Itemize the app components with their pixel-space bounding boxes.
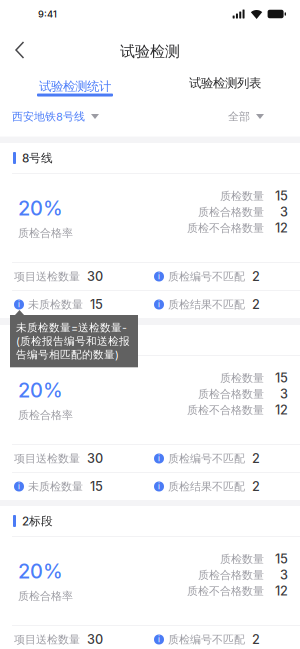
staticText: 12 — [275, 402, 288, 418]
staticText: i — [18, 482, 20, 491]
staticText: i — [158, 454, 160, 463]
staticText: 12 — [275, 220, 288, 236]
staticText: 全部 — [228, 110, 250, 123]
button[interactable]: 试验检测统计 — [0, 66, 150, 98]
staticText: 3 — [280, 386, 288, 402]
staticText: 15 — [90, 297, 103, 312]
staticText: 质检结果不匹配 — [168, 298, 245, 311]
staticText: 质检合格数量 — [198, 387, 264, 401]
staticText: 质检编号不匹配 — [168, 270, 245, 283]
staticText: 质检合格数量 — [198, 205, 264, 219]
staticText: 试验检测统计 — [39, 78, 111, 94]
staticText: 2 — [252, 632, 260, 647]
staticText: 西安地铁8号线 — [12, 110, 85, 123]
staticText: 试验检测列表 — [189, 75, 261, 91]
button[interactable]: 西安地铁8号线 — [0, 98, 99, 137]
staticText: 30 — [87, 632, 103, 647]
staticText: 质检数量 — [220, 371, 264, 385]
staticText: 20% — [18, 196, 63, 220]
staticText: i — [158, 635, 160, 644]
staticText: 质检不合格数量 — [187, 221, 264, 235]
staticText: 20% — [18, 559, 63, 583]
staticText: 质检编号不匹配 — [168, 452, 245, 465]
staticText: 质检合格率 — [18, 408, 73, 422]
staticText: 2 — [252, 297, 260, 312]
staticText: 30 — [87, 269, 103, 284]
staticText: 2 — [252, 451, 260, 466]
staticText: 2 — [252, 269, 260, 284]
staticText: 15 — [275, 188, 288, 204]
button[interactable]: 试验检测列表 — [150, 66, 300, 98]
staticText: 未质检数量 — [28, 480, 83, 493]
staticText: 项目送检数量 — [14, 270, 80, 283]
staticText: 项目送检数量 — [14, 452, 80, 465]
staticText: 未质检数量=送检数量-(质检报告编号和送检报告编号相匹配的数量) — [16, 321, 130, 361]
button[interactable]: Back — [0, 28, 37, 66]
staticText: 质检数量 — [220, 552, 264, 566]
staticText: 8号线 — [22, 151, 53, 165]
staticText: i — [158, 482, 160, 491]
button[interactable]: 全部 — [228, 98, 300, 137]
staticText: 15 — [275, 551, 288, 567]
staticText: 试验检测 — [120, 42, 180, 61]
staticText: 质检不合格数量 — [187, 584, 264, 598]
staticText: 3 — [280, 567, 288, 583]
staticText: 15 — [90, 479, 103, 494]
staticText: 质检合格率 — [18, 589, 73, 603]
staticText: 2 — [252, 479, 260, 494]
staticText: 1标段 — [22, 333, 51, 347]
staticText: i — [158, 272, 160, 281]
staticText: 质检结果不匹配 — [168, 480, 245, 493]
staticText: 质检编号不匹配 — [168, 633, 245, 646]
staticText: 12 — [275, 583, 288, 599]
staticText: 质检不合格数量 — [187, 403, 264, 417]
staticText: 15 — [275, 370, 288, 386]
staticText: 20% — [18, 378, 63, 402]
staticText: 30 — [87, 451, 103, 466]
staticText: 9:41 — [38, 8, 57, 20]
staticText: 2标段 — [22, 514, 53, 528]
staticText: 未质检数量 — [28, 298, 83, 311]
staticText: i — [18, 300, 20, 309]
staticText: 项目送检数量 — [14, 633, 80, 646]
staticText: 质检合格数量 — [198, 568, 264, 582]
staticText: 质检数量 — [220, 189, 264, 203]
staticText: 3 — [280, 204, 288, 220]
staticText: 质检合格率 — [18, 226, 73, 240]
staticText: i — [158, 300, 160, 309]
